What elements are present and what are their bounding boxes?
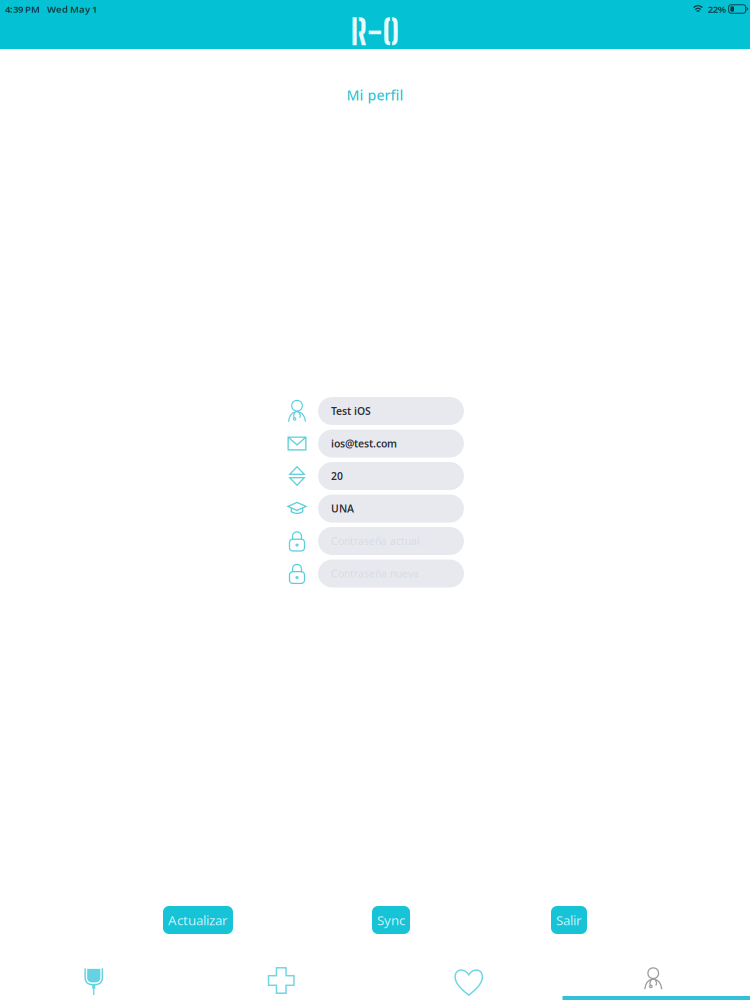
staticText: Wed May 1 — [47, 2, 97, 16]
staticText: Contraseña nueva — [331, 566, 419, 581]
staticText: ios@test.com — [331, 436, 397, 451]
button[interactable]: Mi perfil — [562, 959, 750, 1000]
button[interactable]: Urgencias — [187, 959, 375, 1000]
button[interactable]: Tratamientos — [0, 959, 187, 1000]
button[interactable]: Sync — [372, 906, 410, 934]
staticText: Sync — [377, 911, 405, 929]
button[interactable]: Salir — [551, 906, 587, 934]
staticText: Contraseña actual — [331, 534, 420, 548]
staticText: Mi perfil — [346, 85, 403, 105]
staticText: 4:39 PM — [5, 2, 40, 16]
staticText: R-O — [350, 11, 399, 53]
button[interactable]: Favoritos — [375, 959, 562, 1000]
staticText: UNA — [331, 501, 354, 516]
staticText: 20 — [331, 469, 343, 483]
staticText: Salir — [556, 911, 582, 929]
staticText: 22% — [708, 2, 726, 16]
button[interactable]: Actualizar — [163, 906, 233, 934]
staticText: Test iOS — [331, 404, 371, 418]
staticText: Actualizar — [168, 911, 228, 929]
